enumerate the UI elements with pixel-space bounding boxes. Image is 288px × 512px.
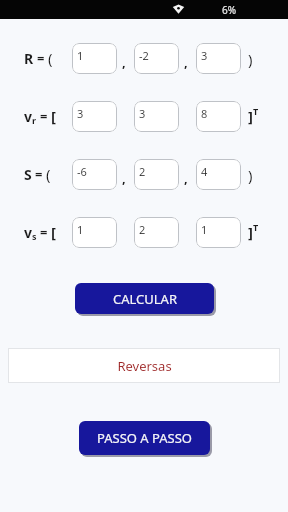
staticText: 4 — [201, 164, 208, 179]
staticText: CALCULAR — [113, 290, 177, 308]
button[interactable]: 2 — [134, 159, 179, 190]
staticText: ) — [248, 49, 253, 69]
staticText: , — [122, 169, 126, 187]
staticText: PASSO A PASSO — [97, 429, 192, 447]
staticText: = — [40, 107, 48, 125]
staticText: , — [184, 169, 188, 187]
staticText: , — [184, 53, 188, 71]
staticText: = — [40, 223, 48, 241]
staticText: -6 — [77, 164, 87, 179]
staticText: 1 — [77, 48, 84, 63]
staticText: 3 — [139, 106, 146, 121]
staticText: ] — [248, 222, 253, 242]
button[interactable]: -6 — [72, 159, 117, 190]
staticText: r — [32, 114, 37, 126]
staticText: 8 — [201, 106, 208, 121]
button[interactable]: 3 — [134, 101, 179, 132]
staticText: ] — [248, 106, 253, 126]
staticText: T — [253, 221, 259, 233]
staticText: R — [24, 49, 34, 68]
staticText: v — [24, 223, 32, 242]
button[interactable]: 3 — [72, 101, 117, 132]
staticText: ) — [248, 165, 253, 185]
button[interactable]: 1 — [72, 43, 117, 74]
staticText: 6% — [222, 3, 237, 17]
staticText: 3 — [201, 48, 208, 63]
button[interactable]: 4 — [196, 159, 241, 190]
button[interactable]: Reversas — [8, 348, 280, 383]
button[interactable]: 1 — [196, 217, 241, 248]
staticText: T — [253, 105, 259, 117]
staticText: ( — [48, 48, 53, 68]
staticText: 2 — [139, 222, 146, 237]
staticText: v — [24, 107, 32, 126]
staticText: = — [37, 49, 45, 67]
staticText: ( — [46, 164, 51, 184]
staticText: 1 — [77, 222, 84, 237]
button[interactable]: -2 — [134, 43, 179, 74]
staticText: = — [35, 165, 43, 183]
staticText: [ — [51, 106, 56, 126]
staticText: [ — [51, 222, 56, 242]
staticText: 3 — [77, 106, 84, 121]
staticText: -2 — [139, 48, 149, 63]
button[interactable]: 2 — [134, 217, 179, 248]
staticText: Reversas — [117, 357, 172, 375]
button[interactable]: CALCULAR — [75, 283, 214, 314]
staticText: 1 — [201, 222, 208, 237]
staticText: s — [32, 230, 37, 242]
staticText: , — [122, 53, 126, 71]
staticText: S — [24, 165, 32, 184]
button[interactable]: 3 — [196, 43, 241, 74]
staticText: 2 — [139, 164, 146, 179]
button[interactable]: PASSO A PASSO — [79, 421, 210, 455]
button[interactable]: 1 — [72, 217, 117, 248]
button[interactable]: 8 — [196, 101, 241, 132]
